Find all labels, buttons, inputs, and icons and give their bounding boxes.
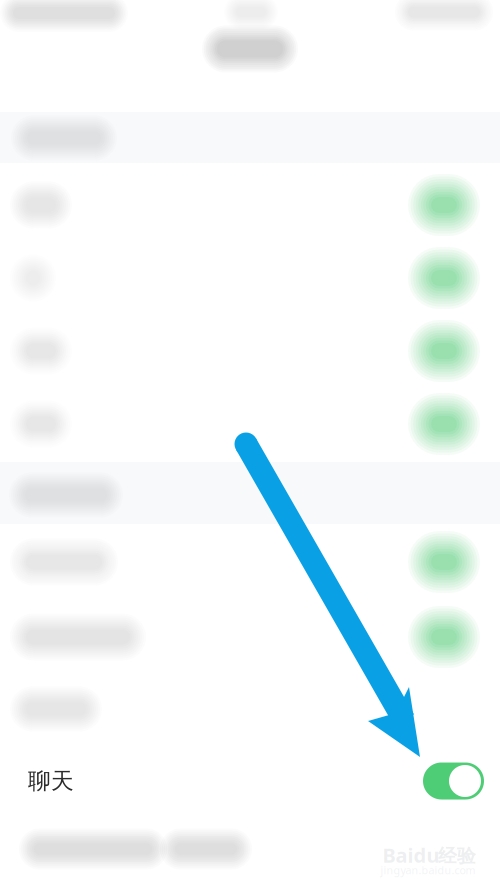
staticText: jingyan.baidu.com <box>380 863 475 877</box>
staticText: 经验 <box>438 844 476 867</box>
staticText: Baidu <box>382 842 439 868</box>
button[interactable]: 聊天 <box>0 742 500 820</box>
staticText: 聊天 <box>28 767 74 795</box>
